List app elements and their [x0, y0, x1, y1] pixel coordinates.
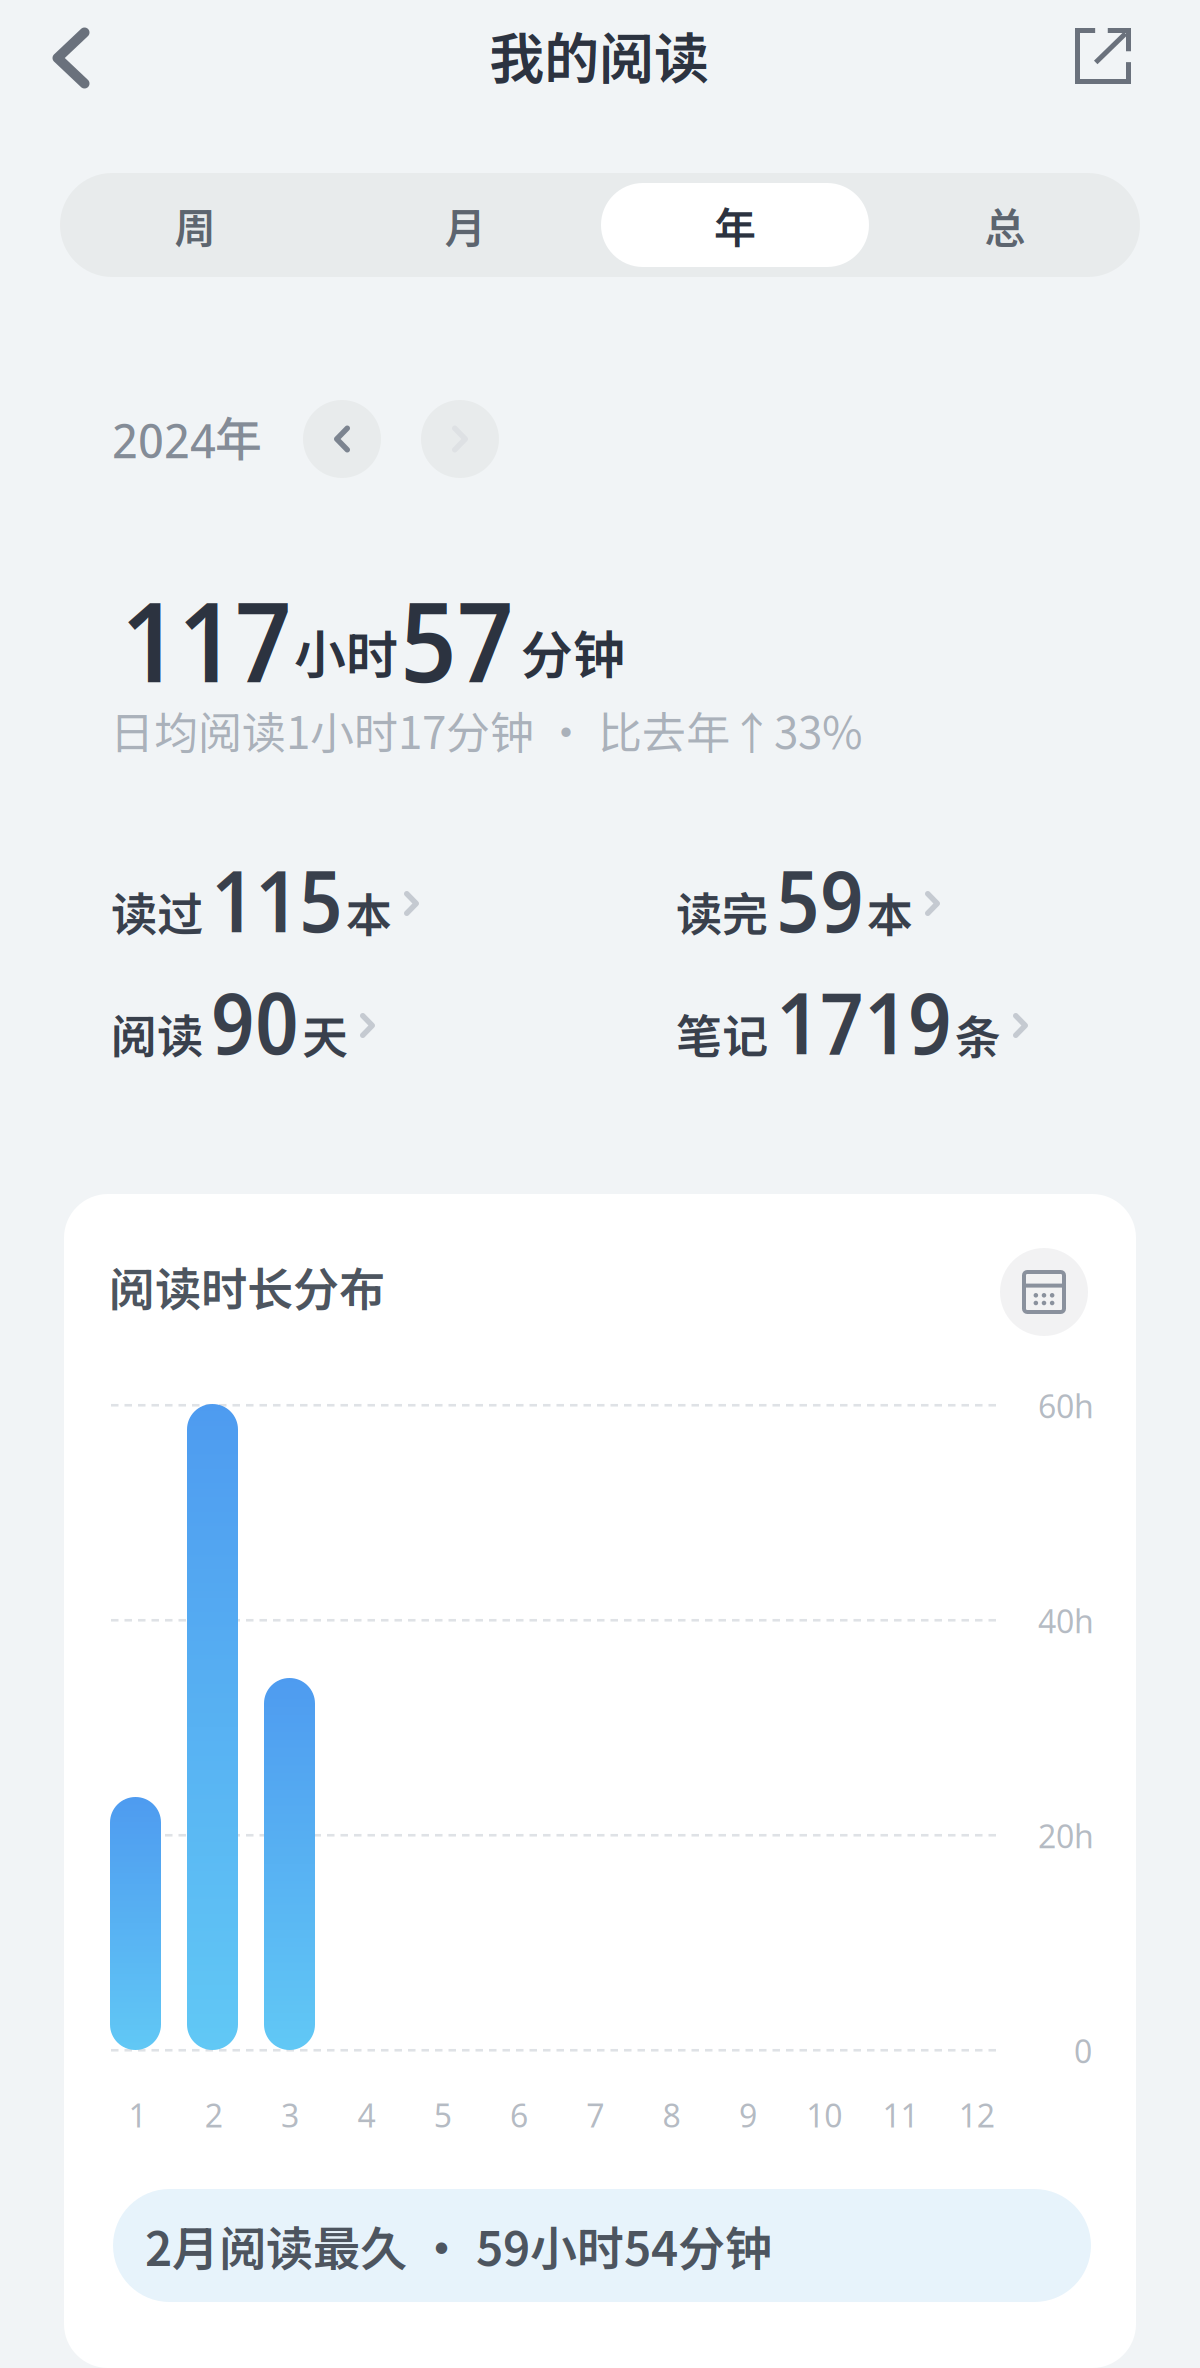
- staticText: 4: [357, 2093, 375, 2137]
- staticText: 60h: [1038, 1384, 1094, 1428]
- staticText: 小时: [294, 614, 398, 689]
- staticText: 11: [882, 2093, 918, 2137]
- staticText: 20h: [1038, 1814, 1094, 1858]
- staticText: 日均阅读1小时17分钟 · 比去年↑33%: [110, 698, 863, 762]
- button[interactable]: Calendar: [1000, 1248, 1088, 1336]
- staticText: 我的阅读: [489, 15, 709, 95]
- staticText: 月: [444, 195, 485, 255]
- button[interactable]: 月: [330, 173, 600, 277]
- staticText: 本: [346, 879, 392, 946]
- staticText: 阅读时长分布: [109, 1253, 385, 1320]
- staticText: 阅读: [111, 1000, 203, 1067]
- staticText: 年: [215, 402, 262, 470]
- button[interactable]: 读过: [111, 841, 427, 933]
- staticText: 5: [434, 2093, 452, 2137]
- staticText: 2024: [112, 407, 216, 472]
- staticText: 1719: [776, 963, 952, 1079]
- staticText: 90: [211, 963, 299, 1079]
- staticText: 读完: [676, 878, 768, 945]
- staticText: 10: [806, 2093, 842, 2137]
- staticText: 6: [510, 2093, 528, 2137]
- button[interactable]: 笔记: [676, 963, 1036, 1055]
- staticText: 本: [867, 879, 913, 946]
- staticText: 40h: [1038, 1599, 1094, 1643]
- staticText: 周: [174, 195, 215, 255]
- staticText: 天: [302, 1001, 348, 1068]
- button[interactable]: 读完: [676, 841, 948, 933]
- staticText: 3: [281, 2093, 299, 2137]
- staticText: 年: [714, 195, 756, 255]
- staticText: 8: [663, 2093, 681, 2137]
- staticText: 117: [121, 564, 292, 715]
- staticText: 笔记: [676, 1000, 768, 1067]
- button[interactable]: Share: [1047, 0, 1159, 112]
- staticText: 7: [586, 2093, 604, 2137]
- staticText: 分钟: [521, 614, 625, 689]
- button[interactable]: 总: [870, 173, 1140, 277]
- staticText: 条: [955, 1001, 1001, 1068]
- staticText: 读过: [111, 878, 203, 945]
- button[interactable]: Next year: [421, 400, 499, 478]
- button[interactable]: 年: [600, 173, 870, 277]
- staticText: 1: [128, 2093, 146, 2137]
- staticText: 12: [959, 2093, 995, 2137]
- staticText: 总: [984, 195, 1025, 255]
- staticText: 2: [205, 2093, 223, 2137]
- staticText: 0: [1074, 2029, 1092, 2073]
- staticText: 2月阅读最久 · 59小时54分钟: [145, 2211, 772, 2280]
- button[interactable]: 阅读: [111, 963, 383, 1055]
- staticText: 59: [776, 841, 864, 957]
- button[interactable]: Previous year: [303, 400, 381, 478]
- staticText: 57: [400, 564, 514, 715]
- staticText: 115: [211, 841, 343, 957]
- staticText: 9: [739, 2093, 757, 2137]
- button[interactable]: 周: [60, 173, 330, 277]
- button[interactable]: Back: [15, 2, 127, 114]
